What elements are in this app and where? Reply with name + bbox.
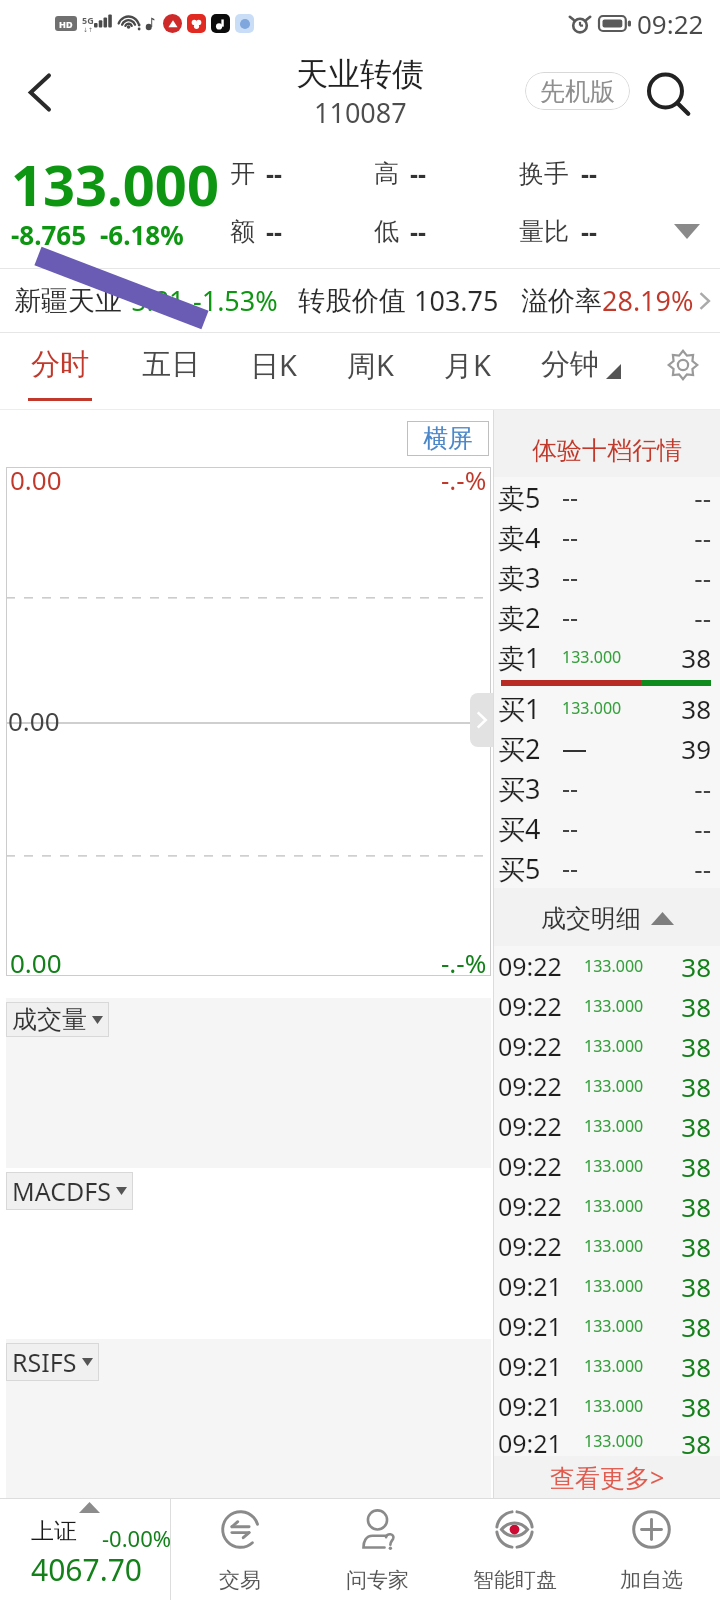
button[interactable]: Expand order book (470, 693, 493, 747)
button[interactable]: 09:22 (498, 1226, 711, 1266)
button[interactable]: 问专家 (309, 1498, 446, 1600)
staticText: 133.000 (584, 1275, 681, 1297)
button[interactable]: 日K (225, 333, 322, 410)
button[interactable]: 卖3 (498, 557, 711, 597)
button[interactable]: 分钟 (516, 333, 646, 410)
button[interactable]: 卖5 (498, 477, 711, 517)
button[interactable]: Search (641, 71, 697, 119)
button[interactable]: 买1 (498, 688, 711, 728)
button[interactable]: 查看更多> (494, 1456, 720, 1498)
staticText: 量比 (519, 216, 581, 247)
staticText: -- (562, 560, 694, 594)
staticText: 133.000 (584, 1395, 681, 1417)
staticText: 28.19% (602, 282, 694, 319)
staticText: 09:22 (498, 1069, 584, 1103)
button[interactable]: 09:22 (498, 1186, 711, 1226)
staticText: 先机版 (540, 76, 615, 107)
staticText: 买4 (498, 810, 562, 847)
button[interactable]: 09:22 (498, 1106, 711, 1146)
button[interactable]: 卖1 (498, 637, 711, 677)
button[interactable]: 加自选 (583, 1498, 720, 1600)
staticText: — (562, 731, 681, 765)
staticText: 133.000 (584, 995, 681, 1017)
button[interactable]: Expand (660, 208, 714, 254)
staticText: 133.000 (584, 1235, 681, 1257)
staticText: 38 (681, 1189, 711, 1224)
button[interactable]: 买4 (498, 808, 711, 848)
staticText: 09:21 (498, 1309, 584, 1343)
button[interactable]: 09:22 (498, 1026, 711, 1066)
button[interactable]: 横屏 (407, 421, 489, 456)
button[interactable]: 新疆天业 (0, 269, 720, 332)
staticText: -8.765 (11, 217, 87, 252)
button[interactable]: 先机版 (525, 72, 630, 110)
staticText: -- (694, 600, 711, 635)
button[interactable]: MACDFS (6, 1172, 133, 1210)
button[interactable]: 体验十档行情 (494, 410, 720, 477)
button[interactable]: RSIFS (6, 1343, 99, 1381)
button[interactable]: 买3 (498, 768, 711, 808)
staticText: 110087 (314, 94, 407, 131)
staticText: 上证 (31, 1517, 77, 1546)
button[interactable]: 09:22 (498, 946, 711, 986)
staticText: 买2 (498, 730, 562, 767)
staticText: 周K (347, 345, 394, 385)
staticText: -1.53% (193, 282, 278, 319)
button[interactable]: 卖4 (498, 517, 711, 557)
staticText: 38 (681, 1149, 711, 1184)
staticText: 133.000 (11, 146, 219, 222)
staticText: 卖4 (498, 519, 562, 556)
staticText: 133.000 (584, 1075, 681, 1097)
button[interactable]: 成交量 (6, 1002, 109, 1037)
staticText: 09:22 (498, 1109, 584, 1143)
staticText: 38 (681, 1349, 711, 1384)
staticText: 买1 (498, 690, 562, 727)
button[interactable]: 09:21 (498, 1426, 711, 1456)
button[interactable]: 买5 (498, 848, 711, 888)
staticText: -0.00% (102, 1523, 172, 1553)
button[interactable]: 09:21 (498, 1266, 711, 1306)
staticText: 高 (374, 158, 410, 189)
button[interactable]: 周K (322, 333, 419, 410)
staticText: 38 (681, 1389, 711, 1424)
button[interactable]: 交易 (171, 1498, 309, 1600)
button[interactable]: 09:21 (498, 1386, 711, 1426)
button[interactable]: Settings (646, 333, 720, 410)
button[interactable]: 分时 (3, 333, 117, 410)
button[interactable]: 月K (419, 333, 516, 410)
staticText: 成交明细 (541, 903, 641, 934)
staticText: 09:22 (498, 1149, 584, 1183)
staticText: 09:21 (498, 1389, 584, 1423)
button[interactable]: 买2 (498, 728, 711, 768)
button[interactable]: 09:22 (498, 1066, 711, 1106)
staticText: 新疆天业 (14, 284, 122, 318)
staticText: 38 (681, 949, 711, 984)
button[interactable]: 成交明细 (494, 888, 720, 946)
staticText: 换手 (519, 158, 581, 189)
staticText: 38 (681, 1426, 711, 1456)
staticText: 38 (681, 989, 711, 1024)
staticText: 0.00 (10, 462, 62, 497)
staticText: -- (562, 851, 694, 885)
staticText: -- (562, 771, 694, 805)
staticText: 卖5 (498, 479, 562, 516)
button[interactable]: 智能盯盘 (446, 1498, 583, 1600)
button[interactable]: 卖2 (498, 597, 711, 637)
staticText: 问专家 (346, 1567, 409, 1593)
staticText: 133.000 (584, 1355, 681, 1377)
button[interactable]: 09:22 (498, 1146, 711, 1186)
button[interactable]: 上证 (0, 1498, 170, 1600)
staticText: 09:22 (498, 949, 584, 983)
staticText: -- (694, 771, 711, 806)
staticText: -- (410, 156, 427, 190)
button[interactable]: 09:22 (498, 986, 711, 1026)
staticText: -- (694, 520, 711, 555)
staticText: -- (581, 214, 598, 248)
button[interactable]: Back (0, 46, 80, 138)
button[interactable]: 五日 (117, 333, 225, 410)
button[interactable]: 09:21 (498, 1346, 711, 1386)
staticText: 09:21 (498, 1349, 584, 1383)
staticText: 133.000 (562, 697, 681, 719)
button[interactable]: 09:21 (498, 1306, 711, 1346)
staticText: 分钟 (541, 346, 599, 383)
